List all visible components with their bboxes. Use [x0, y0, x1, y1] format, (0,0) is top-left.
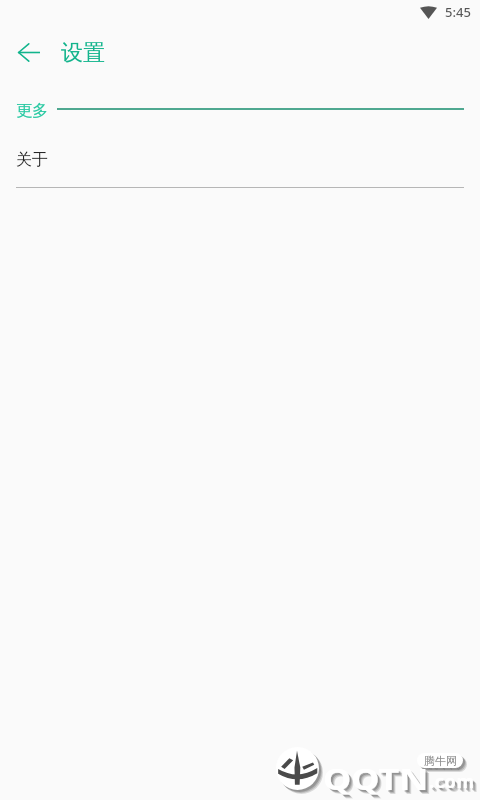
other: Wi-Fi signal	[420, 6, 437, 19]
staticText: QQTN	[325, 762, 431, 800]
staticText: 设置	[61, 39, 105, 67]
staticText: 更多	[16, 101, 48, 121]
staticText: 腾牛网	[424, 754, 457, 768]
staticText: 腾牛网	[426, 756, 459, 770]
staticText: QQTN	[327, 764, 433, 800]
staticText: 关于	[16, 150, 48, 170]
staticText: QQTN	[326, 763, 432, 800]
staticText: QQTN	[323, 760, 429, 798]
button[interactable]: Back	[9, 32, 49, 72]
staticText: 腾牛网	[427, 757, 460, 771]
staticText: 5:45	[445, 3, 471, 21]
staticText: .com	[429, 769, 475, 794]
button[interactable]: 关于	[0, 132, 480, 188]
staticText: .com	[433, 773, 479, 798]
staticText: 腾牛网	[428, 758, 461, 772]
staticText: .com	[431, 771, 477, 796]
staticText: .com	[432, 772, 478, 797]
